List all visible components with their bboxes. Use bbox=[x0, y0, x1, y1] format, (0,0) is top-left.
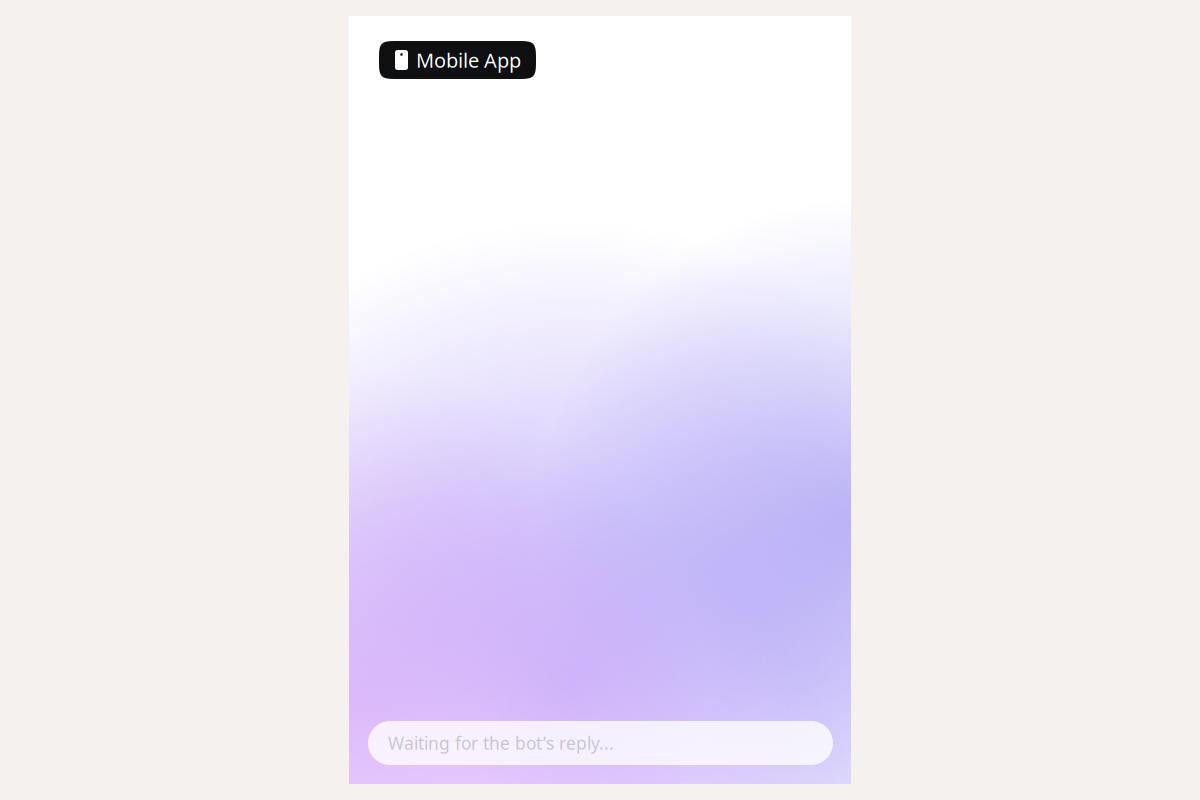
staticText: Mobile App bbox=[416, 47, 521, 73]
button[interactable]: Waiting for the bot’s reply... bbox=[368, 721, 833, 765]
button[interactable]: Mobile App bbox=[379, 41, 536, 79]
staticText: Waiting for the bot’s reply... bbox=[388, 731, 614, 754]
